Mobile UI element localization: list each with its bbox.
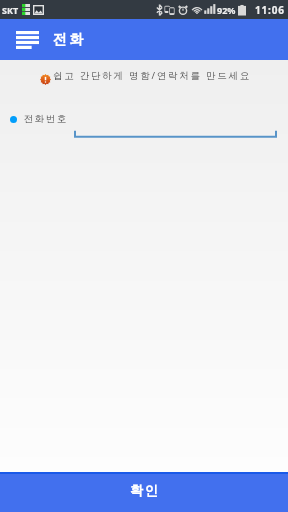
staticText: 전화번호 <box>23 113 67 125</box>
button[interactable]: 전화번호 입력 <box>74 113 277 138</box>
staticText: 쉽고 간단하게 명함/연락처를 만드세요 <box>53 69 251 82</box>
button[interactable]: 확인 <box>0 472 288 512</box>
staticText: 전화 <box>51 31 85 49</box>
button[interactable]: Menu <box>10 25 44 55</box>
staticText: 92% <box>217 4 236 16</box>
staticText: 확인 <box>129 482 159 498</box>
staticText: 11:06 <box>255 3 285 17</box>
staticText: SKT <box>2 4 19 16</box>
